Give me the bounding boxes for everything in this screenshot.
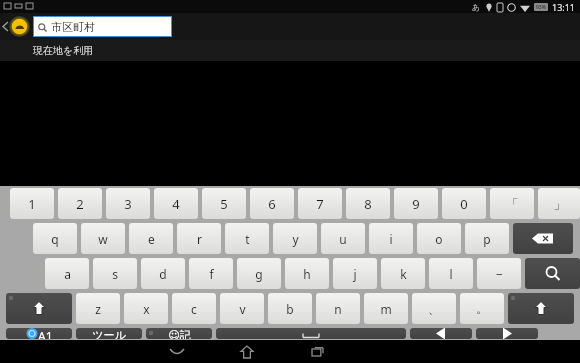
button[interactable]: Tools — [76, 328, 142, 339]
button[interactable]: u — [321, 223, 365, 254]
button[interactable]: − — [477, 258, 521, 289]
button[interactable]: Input mode — [6, 328, 72, 339]
staticText: 0 — [460, 195, 468, 213]
staticText: l — [449, 266, 453, 282]
button[interactable]: q — [33, 223, 77, 254]
staticText: u — [339, 231, 347, 247]
staticText: c — [191, 301, 197, 317]
staticText: i — [389, 231, 393, 247]
staticText: 2 — [76, 195, 84, 213]
button[interactable]: 5 — [202, 188, 246, 219]
button[interactable]: 「 — [490, 188, 534, 219]
button[interactable]: 6 — [250, 188, 294, 219]
button[interactable]: k — [381, 258, 425, 289]
staticText: b — [286, 301, 294, 317]
staticText: y — [292, 231, 299, 247]
button[interactable]: 8 — [346, 188, 390, 219]
button[interactable]: 7 — [298, 188, 342, 219]
button[interactable]: 2 — [58, 188, 102, 219]
staticText: w — [98, 231, 108, 247]
button[interactable]: 」 — [538, 188, 580, 219]
button[interactable]: f — [189, 258, 233, 289]
staticText: 」 — [553, 196, 566, 212]
staticText: g — [255, 266, 263, 282]
button[interactable]: Recent apps — [282, 340, 352, 363]
staticText: 6 — [268, 195, 276, 213]
button[interactable]: y — [273, 223, 317, 254]
staticText: 9 — [412, 195, 420, 213]
button[interactable]: h — [285, 258, 329, 289]
button[interactable]: c — [172, 293, 216, 324]
button[interactable]: p — [465, 223, 509, 254]
button[interactable]: 1 — [10, 188, 54, 219]
button[interactable]: Up — [0, 13, 33, 40]
button[interactable]: n — [316, 293, 360, 324]
button[interactable]: Hide keyboard — [142, 340, 212, 363]
button[interactable]: 4 — [154, 188, 198, 219]
staticText: 4 — [172, 195, 180, 213]
button[interactable]: g — [237, 258, 281, 289]
staticText: 5 — [220, 195, 228, 213]
button[interactable]: Emoji — [146, 328, 212, 339]
staticText: 「 — [506, 196, 519, 212]
button[interactable]: Space — [216, 328, 406, 339]
button[interactable]: v — [220, 293, 264, 324]
staticText: q — [51, 231, 59, 247]
button[interactable]: Cursor right — [476, 328, 538, 339]
button[interactable]: w — [81, 223, 125, 254]
staticText: 。 — [476, 301, 488, 316]
staticText: 7 — [316, 195, 324, 213]
staticText: f — [209, 266, 214, 282]
staticText: ☺記 — [168, 328, 191, 339]
staticText: h — [303, 266, 311, 282]
button[interactable]: x — [124, 293, 168, 324]
button[interactable]: Home — [212, 340, 282, 363]
staticText: r — [197, 231, 202, 247]
staticText: 1 — [28, 195, 36, 213]
staticText: p — [483, 231, 491, 247]
staticText: あ — [472, 2, 481, 12]
staticText: 現在地を利用 — [33, 44, 94, 57]
staticText: d — [159, 266, 167, 282]
button[interactable]: 。 — [460, 293, 504, 324]
button[interactable]: t — [225, 223, 269, 254]
staticText: a — [64, 266, 71, 282]
button[interactable]: j — [333, 258, 377, 289]
staticText: n — [334, 301, 342, 317]
staticText: s — [112, 266, 118, 282]
button[interactable]: 9 — [394, 188, 438, 219]
staticText: ツール — [92, 328, 126, 339]
button[interactable]: Search — [525, 258, 580, 289]
button[interactable]: 市区町村 — [33, 16, 172, 37]
button[interactable]: d — [141, 258, 185, 289]
staticText: x — [143, 301, 150, 317]
staticText: − — [496, 266, 503, 282]
button[interactable]: z — [76, 293, 120, 324]
button[interactable]: Shift — [6, 293, 72, 324]
button[interactable]: l — [429, 258, 473, 289]
button[interactable]: s — [93, 258, 137, 289]
button[interactable]: e — [129, 223, 173, 254]
button[interactable]: Backspace — [513, 223, 573, 254]
staticText: j — [353, 266, 357, 282]
button[interactable]: Cursor left — [410, 328, 472, 339]
button[interactable]: a — [45, 258, 89, 289]
staticText: 8 — [364, 195, 372, 213]
button[interactable]: b — [268, 293, 312, 324]
button[interactable]: Shift — [508, 293, 574, 324]
button[interactable]: o — [417, 223, 461, 254]
staticText: 13:11 — [552, 1, 576, 13]
button[interactable]: i — [369, 223, 413, 254]
button[interactable]: 0 — [442, 188, 486, 219]
button[interactable]: m — [364, 293, 408, 324]
staticText: 市区町村 — [51, 20, 95, 34]
staticText: m — [380, 301, 392, 317]
button[interactable]: 現在地を利用 — [0, 40, 580, 61]
button[interactable]: 、 — [412, 293, 456, 324]
button[interactable]: r — [177, 223, 221, 254]
button[interactable]: 3 — [106, 188, 150, 219]
staticText: o — [435, 231, 443, 247]
staticText: v — [239, 301, 246, 317]
staticText: 3 — [124, 195, 132, 213]
staticText: 93% — [536, 4, 546, 11]
